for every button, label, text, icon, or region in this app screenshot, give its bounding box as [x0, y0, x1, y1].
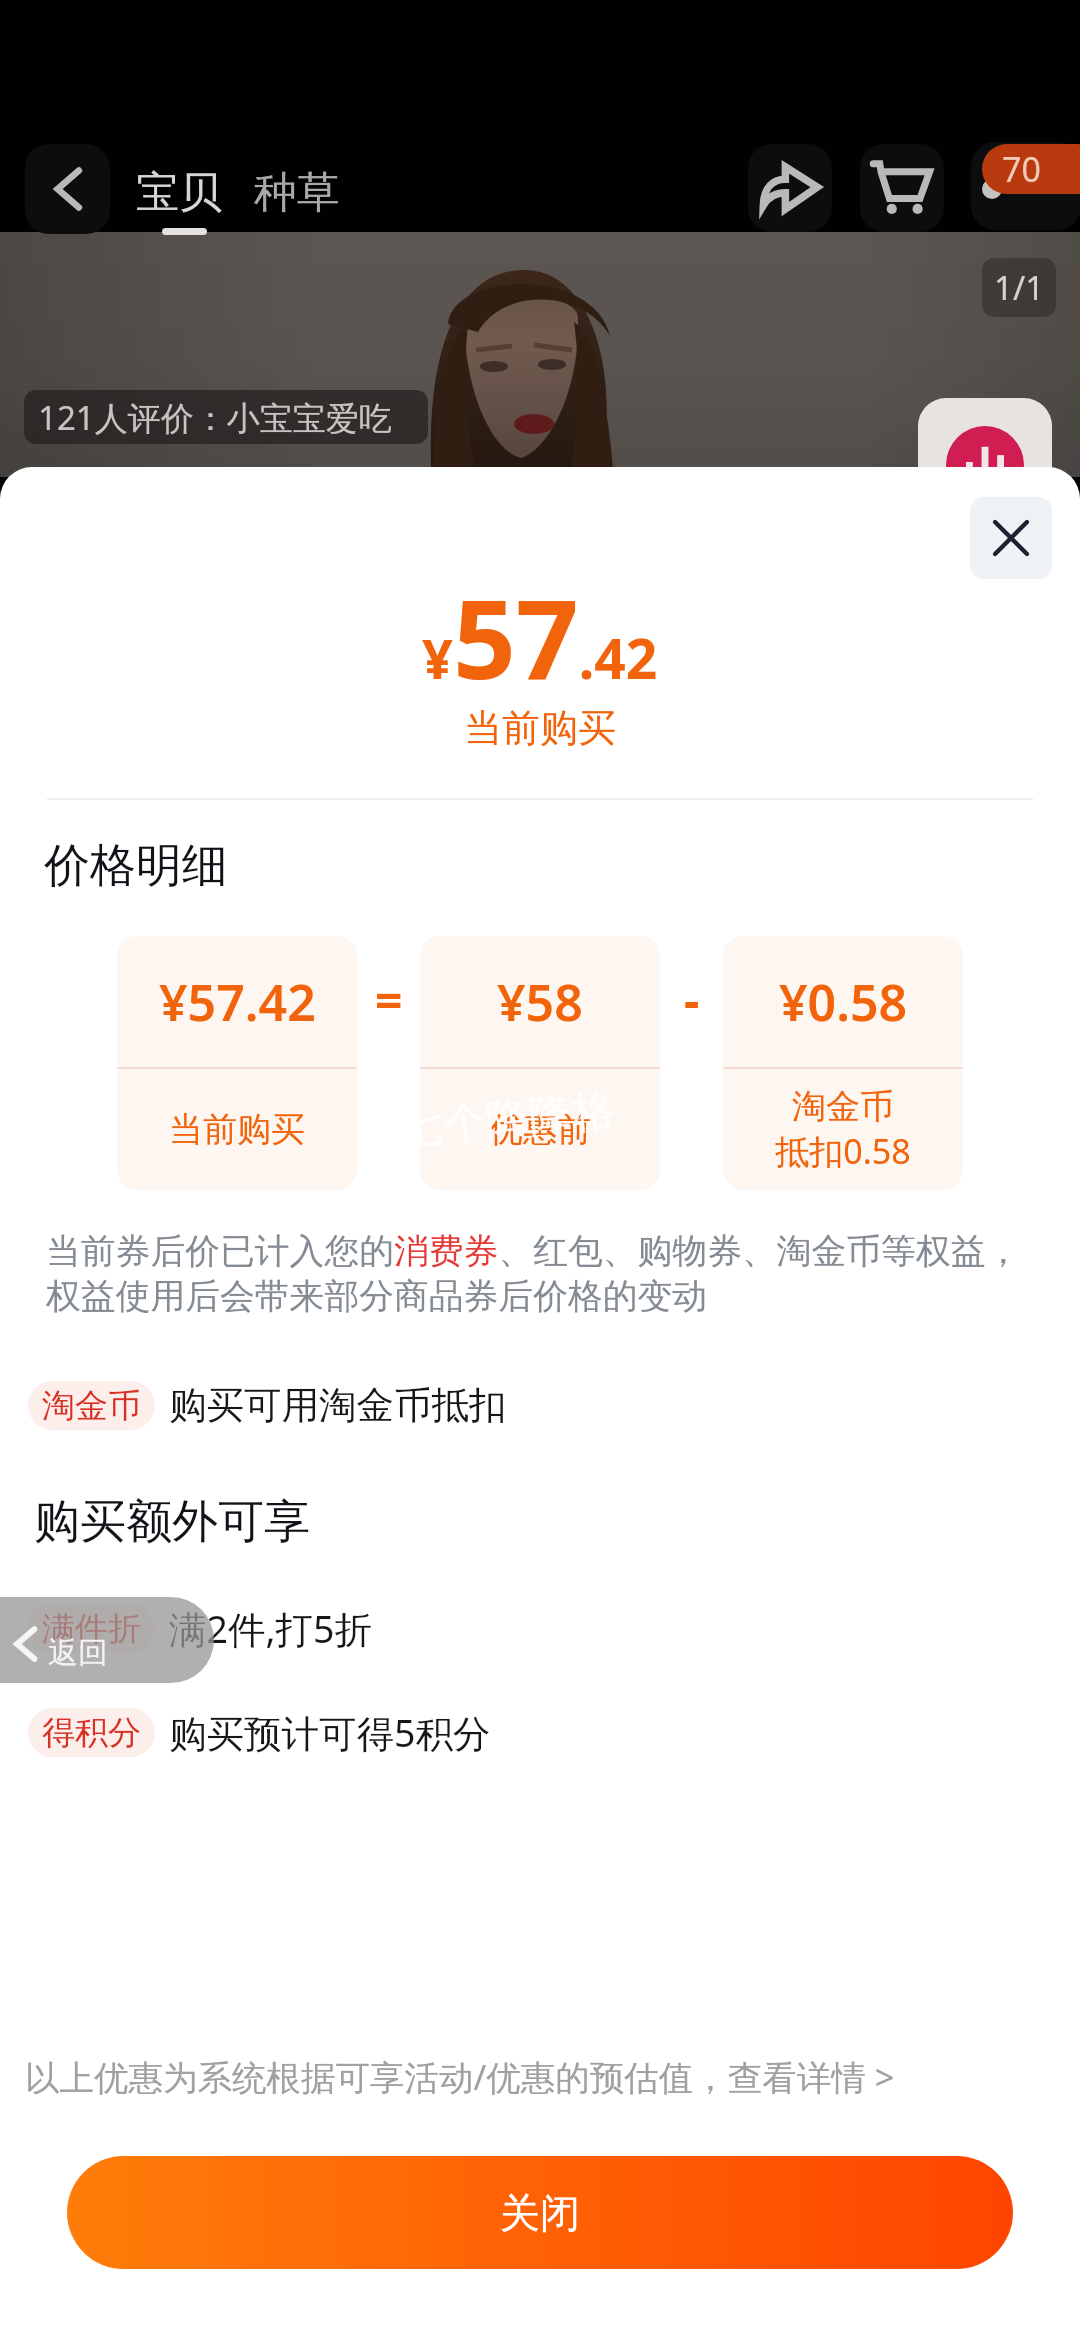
button[interactable]: ¥0.58	[723, 936, 963, 1190]
staticText: ¥0.58	[779, 968, 908, 1036]
button[interactable]: 121人评价：小宝宝爱吃	[24, 390, 428, 444]
staticText: =	[375, 967, 403, 1032]
button[interactable]: 种草	[254, 166, 340, 220]
staticText: 以上优惠为系统根据可享活动/优惠的预估值，查看详情 >	[25, 2053, 895, 2100]
staticText: ¥57.42	[159, 968, 316, 1036]
staticText: ¥58	[497, 968, 583, 1036]
button[interactable]: 以上优惠为系统根据可享活动/优惠的预估值，查看详情 >	[25, 2053, 895, 2100]
staticText: 当前券后价已计入您的消费券、红包、购物券、淘金币等权益，权益使用后会带来部分商品…	[46, 1229, 1046, 1318]
button[interactable]: ¥58	[420, 936, 660, 1190]
staticText: 淘金币	[42, 1385, 141, 1427]
staticText: 淘金币 抵扣0.58	[775, 1085, 911, 1174]
staticText: 得积分	[42, 1712, 141, 1754]
staticText: 121人评价：小宝宝爱吃	[38, 395, 392, 440]
staticText: 返回	[48, 1634, 108, 1672]
staticText: 满件折	[42, 1608, 141, 1650]
staticText: 购买预计可得5积分	[169, 1707, 491, 1758]
staticText: 种草	[254, 166, 340, 220]
staticText: 优惠前	[489, 1108, 591, 1151]
staticText: 购买额外可享	[34, 1493, 310, 1551]
staticText: 七个降降格	[398, 1084, 617, 1156]
staticText: 70	[1002, 146, 1041, 192]
staticText: 当前购买	[464, 704, 616, 752]
button[interactable]: Back	[25, 144, 110, 234]
button[interactable]: 宝贝	[136, 166, 222, 220]
staticText: 关闭	[500, 2188, 580, 2238]
button[interactable]: Share	[748, 144, 832, 232]
button[interactable]: 得积分	[28, 1707, 491, 1758]
staticText: 购买可用淘金币抵扣	[169, 1382, 507, 1429]
button[interactable]: Page 1 of 1	[982, 258, 1056, 317]
other: Back gesture hint	[0, 1597, 214, 1683]
staticText: 1/1	[994, 265, 1045, 310]
button[interactable]: ¥57.42	[117, 936, 357, 1190]
button[interactable]: More options	[971, 142, 1080, 230]
staticText: 价格明细	[44, 837, 228, 895]
button[interactable]: Shopping cart	[860, 144, 944, 232]
staticText: 宝贝	[136, 166, 222, 220]
button[interactable]: 关闭	[67, 2156, 1013, 2269]
staticText: -	[684, 967, 700, 1032]
button[interactable]: 淘金币	[28, 1381, 507, 1430]
staticText: 当前购买	[169, 1108, 305, 1151]
button[interactable]: 满件折	[28, 1603, 372, 1654]
staticText: ¥57.42	[422, 561, 658, 711]
staticText: 满2件,打5折	[169, 1603, 372, 1654]
button[interactable]: Close	[970, 497, 1052, 579]
button[interactable]: Price trend	[918, 398, 1052, 532]
